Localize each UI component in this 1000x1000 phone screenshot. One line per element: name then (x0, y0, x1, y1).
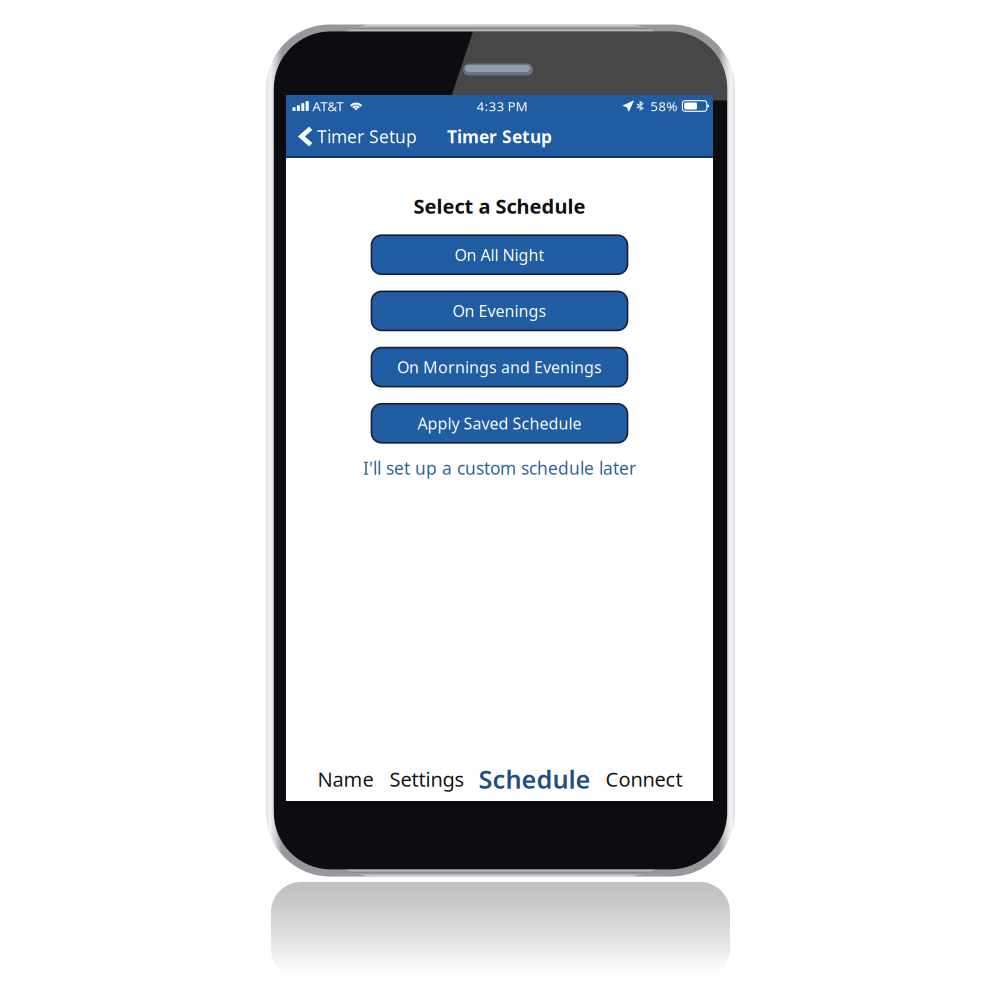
staticText: Name (317, 766, 373, 792)
staticText: On Mornings and Evenings (397, 356, 602, 378)
staticText: AT&T (312, 97, 343, 115)
button[interactable]: Settings (382, 757, 471, 801)
staticText: 58% (650, 97, 677, 115)
staticText: On All Night (454, 244, 544, 265)
button[interactable]: Apply Saved Schedule (371, 404, 627, 443)
staticText: 4:33 PM (476, 97, 527, 115)
staticText: Connect (605, 766, 682, 792)
staticText: I'll set up a custom schedule later (363, 456, 636, 479)
staticText: Apply Saved Schedule (417, 413, 581, 434)
staticText: Schedule (478, 762, 590, 796)
staticText: Select a Schedule (413, 193, 585, 219)
button[interactable]: Name (308, 757, 382, 801)
staticText: Timer Setup (447, 125, 552, 148)
staticText: Settings (389, 766, 464, 792)
button[interactable]: Connect (597, 757, 690, 801)
button[interactable]: On Mornings and Evenings (371, 348, 627, 387)
button[interactable]: Timer Setup (286, 117, 427, 156)
staticText: On Evenings (452, 300, 546, 321)
staticText: Timer Setup (317, 125, 417, 148)
button[interactable]: On Evenings (371, 291, 627, 330)
button[interactable]: Schedule (471, 757, 597, 801)
button[interactable]: I'll set up a custom schedule later (286, 455, 713, 481)
button[interactable]: On All Night (371, 235, 627, 274)
